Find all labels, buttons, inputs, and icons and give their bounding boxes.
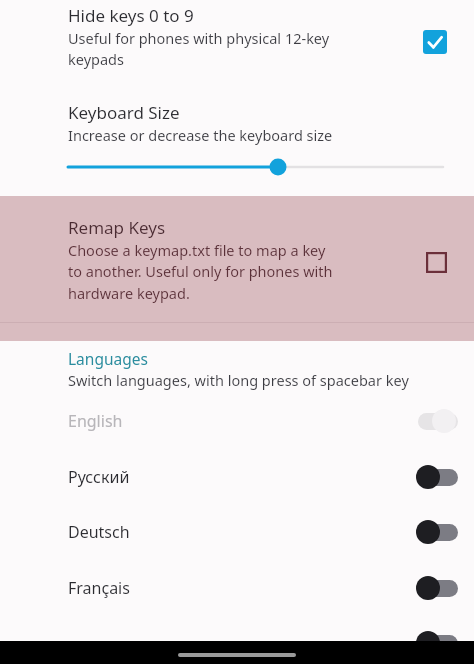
staticText: Languages [68,348,148,369]
button[interactable]: Deutsch toggle [416,519,458,545]
button[interactable]: Français toggle [416,575,458,601]
staticText: Remap Keys [68,216,166,239]
staticText: Deutsch [68,521,130,543]
button[interactable]: English [0,396,474,446]
button[interactable]: English toggle, disabled [416,408,458,434]
button[interactable]: Deutsch [0,507,474,557]
staticText: Русский [68,466,130,488]
button[interactable] [0,0,474,88]
button[interactable]: Français [0,563,474,613]
staticText: English [68,410,123,432]
staticText: Hide keys 0 to 9 [68,4,194,27]
staticText: Useful for phones with physical 12-key k… [68,28,330,70]
button[interactable]: Русский toggle [416,464,458,490]
staticText: Increase or decrease the keyboard size [68,125,333,145]
button[interactable]: Remap Keys checkbox, unchecked [426,252,447,273]
staticText: Switch languages, with long press of spa… [68,370,409,390]
button[interactable]: Remap Keys [0,196,474,341]
button[interactable]: Hide keys 0 to 9 checkbox, checked [423,30,447,54]
staticText: Keyboard Size [68,101,180,124]
staticText: Choose a keymap.txt file to map a key to… [68,240,333,304]
button[interactable]: Keyboard size slider [0,152,474,182]
button[interactable]: Русский [0,452,474,502]
staticText: Français [68,577,130,599]
button[interactable]: Next language toggle [416,630,458,656]
